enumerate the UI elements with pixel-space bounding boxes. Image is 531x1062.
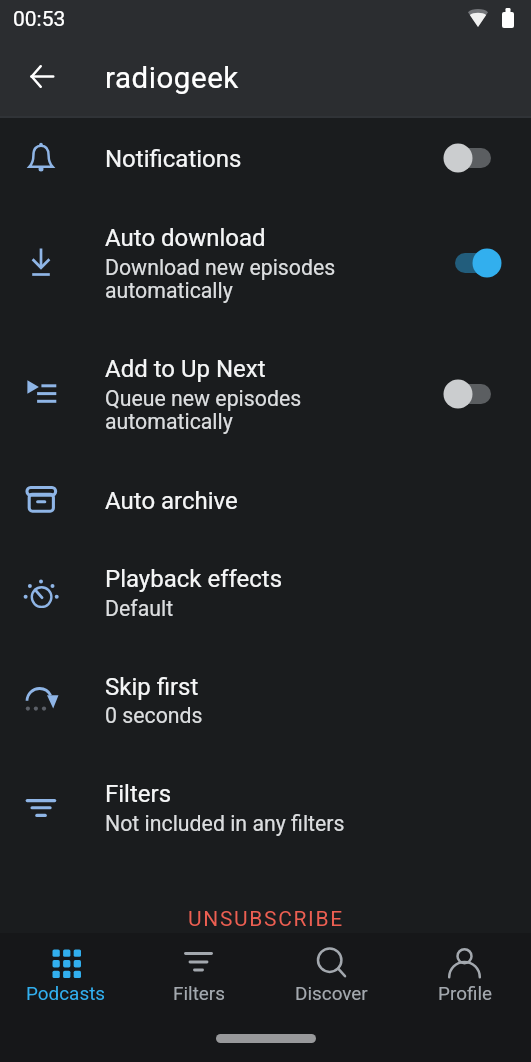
staticText: Add to Up Next	[105, 355, 266, 383]
staticText: Filters	[173, 982, 225, 1004]
button[interactable]: Toggle off	[450, 370, 531, 418]
button[interactable]: Auto archive	[0, 459, 531, 539]
staticText: radiogeek	[105, 61, 239, 96]
staticText: Playback effects	[105, 565, 283, 593]
button[interactable]: Podcasts	[0, 933, 132, 1016]
button[interactable]: Notifications	[0, 118, 531, 197]
button[interactable]: Profile	[398, 933, 531, 1016]
staticText: Download new episodes automatically	[105, 255, 336, 303]
staticText: 00:53	[13, 7, 66, 32]
staticText: Default	[105, 596, 174, 621]
button[interactable]: Filters	[0, 754, 531, 861]
button[interactable]: Skip first	[0, 647, 531, 754]
staticText: 0 seconds	[105, 703, 203, 728]
staticText: Auto archive	[105, 487, 238, 515]
button[interactable]: Toggle off	[450, 134, 531, 182]
staticText: Discover	[295, 982, 368, 1004]
button[interactable]: Discover	[265, 933, 398, 1016]
staticText: UNSUBSCRIBE	[188, 907, 344, 932]
staticText: Notifications	[105, 145, 242, 173]
button[interactable]: Auto download	[0, 197, 531, 329]
staticText: Skip first	[105, 673, 199, 701]
staticText: Not included in any filters	[105, 811, 345, 836]
staticText: Filters	[105, 780, 172, 808]
staticText: Profile	[438, 982, 492, 1004]
staticText: Queue new episodes automatically	[105, 386, 302, 434]
button[interactable]: Playback effects	[0, 539, 531, 647]
button[interactable]: UNSUBSCRIBE	[0, 861, 531, 933]
staticText: Podcasts	[26, 982, 106, 1004]
button[interactable]: Toggle on	[450, 239, 531, 287]
staticText: Auto download	[105, 224, 266, 252]
button[interactable]: Filters	[132, 933, 265, 1016]
button[interactable]: Back	[17, 52, 66, 101]
button[interactable]: Add to Up Next	[0, 329, 531, 459]
